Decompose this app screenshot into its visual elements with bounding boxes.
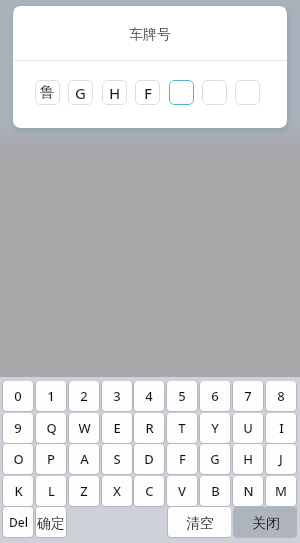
staticText: 7	[244, 387, 252, 405]
staticText: 5	[178, 387, 186, 405]
button[interactable]: O	[3, 444, 33, 474]
button[interactable]: F	[135, 80, 160, 105]
staticText: T	[178, 419, 186, 437]
button[interactable]: 3	[102, 381, 132, 411]
button[interactable]: S	[102, 444, 132, 474]
button[interactable]: L	[36, 476, 66, 506]
staticText: K	[14, 482, 23, 500]
staticText: M	[275, 482, 287, 500]
button[interactable]: 0	[3, 381, 33, 411]
button[interactable]: 确定	[36, 507, 66, 537]
staticText: 0	[14, 387, 22, 405]
staticText: G	[210, 450, 220, 468]
button[interactable]: G	[200, 444, 230, 474]
staticText: R	[145, 419, 154, 437]
staticText: Y	[211, 419, 219, 437]
button[interactable]: 9	[3, 413, 33, 443]
button[interactable]: V	[167, 476, 197, 506]
staticText: 确定	[37, 515, 65, 533]
button[interactable]: 5	[167, 381, 197, 411]
staticText: B	[211, 482, 220, 500]
button[interactable]: G	[68, 80, 93, 105]
button[interactable]: F	[167, 444, 197, 474]
button[interactable]: N	[233, 476, 263, 506]
button[interactable]: X	[102, 476, 132, 506]
button[interactable]: U	[233, 413, 263, 443]
staticText: W	[78, 419, 91, 437]
staticText: L	[48, 482, 55, 500]
staticText: V	[178, 482, 186, 500]
staticText: 4	[145, 387, 153, 405]
staticText: Z	[80, 482, 88, 500]
staticText: H	[243, 450, 253, 468]
button[interactable]: 6	[200, 381, 230, 411]
button[interactable]: 8	[266, 381, 296, 411]
button[interactable]: 7	[233, 381, 263, 411]
staticText: F	[179, 450, 186, 468]
staticText: S	[113, 450, 121, 468]
button[interactable]: 鲁	[35, 80, 60, 105]
button[interactable]: R	[134, 413, 164, 443]
staticText: 1	[47, 387, 55, 405]
button[interactable]: P	[36, 444, 66, 474]
staticText: 8	[277, 387, 285, 405]
staticText: 鲁	[40, 83, 55, 102]
button[interactable]: 1	[36, 381, 66, 411]
staticText: N	[243, 482, 254, 500]
button[interactable]: 关闭	[234, 507, 297, 537]
staticText: Q	[46, 419, 57, 437]
button[interactable]: K	[3, 476, 33, 506]
staticText: J	[279, 450, 283, 468]
button[interactable]: Z	[69, 476, 99, 506]
button[interactable]: I	[266, 413, 296, 443]
staticText: Del	[9, 514, 28, 530]
staticText: A	[80, 450, 89, 468]
staticText: 9	[14, 419, 22, 437]
button[interactable]: H	[233, 444, 263, 474]
staticText: D	[144, 450, 154, 468]
staticText: X	[113, 482, 121, 500]
button[interactable]: W	[69, 413, 99, 443]
staticText: I	[279, 419, 284, 437]
button[interactable]: C	[134, 476, 164, 506]
staticText: 关闭	[252, 515, 280, 533]
button[interactable]: T	[167, 413, 197, 443]
button[interactable]: 2	[69, 381, 99, 411]
staticText: O	[13, 450, 24, 468]
button[interactable]: B	[200, 476, 230, 506]
button[interactable]: H	[102, 80, 127, 105]
staticText: C	[145, 482, 154, 500]
staticText: 车牌号	[129, 26, 171, 44]
staticText: 2	[80, 387, 88, 405]
button[interactable]: A	[69, 444, 99, 474]
button[interactable]: J	[266, 444, 296, 474]
staticText: P	[47, 450, 55, 468]
button[interactable]: D	[134, 444, 164, 474]
staticText: 3	[113, 387, 121, 405]
button[interactable]: Q	[36, 413, 66, 443]
button[interactable]: 清空	[168, 507, 231, 537]
button[interactable]: M	[266, 476, 296, 506]
staticText: 清空	[186, 515, 214, 533]
staticText: 6	[211, 387, 219, 405]
button[interactable]	[169, 80, 194, 105]
button[interactable]: Del	[3, 507, 33, 537]
button[interactable]: E	[102, 413, 132, 443]
staticText: G	[75, 83, 86, 103]
staticText: F	[144, 83, 152, 103]
button[interactable]	[202, 80, 227, 105]
staticText: H	[109, 83, 121, 103]
button[interactable]	[235, 80, 260, 105]
button[interactable]: Y	[200, 413, 230, 443]
button[interactable]: 4	[134, 381, 164, 411]
staticText: E	[113, 419, 121, 437]
staticText: U	[243, 419, 253, 437]
